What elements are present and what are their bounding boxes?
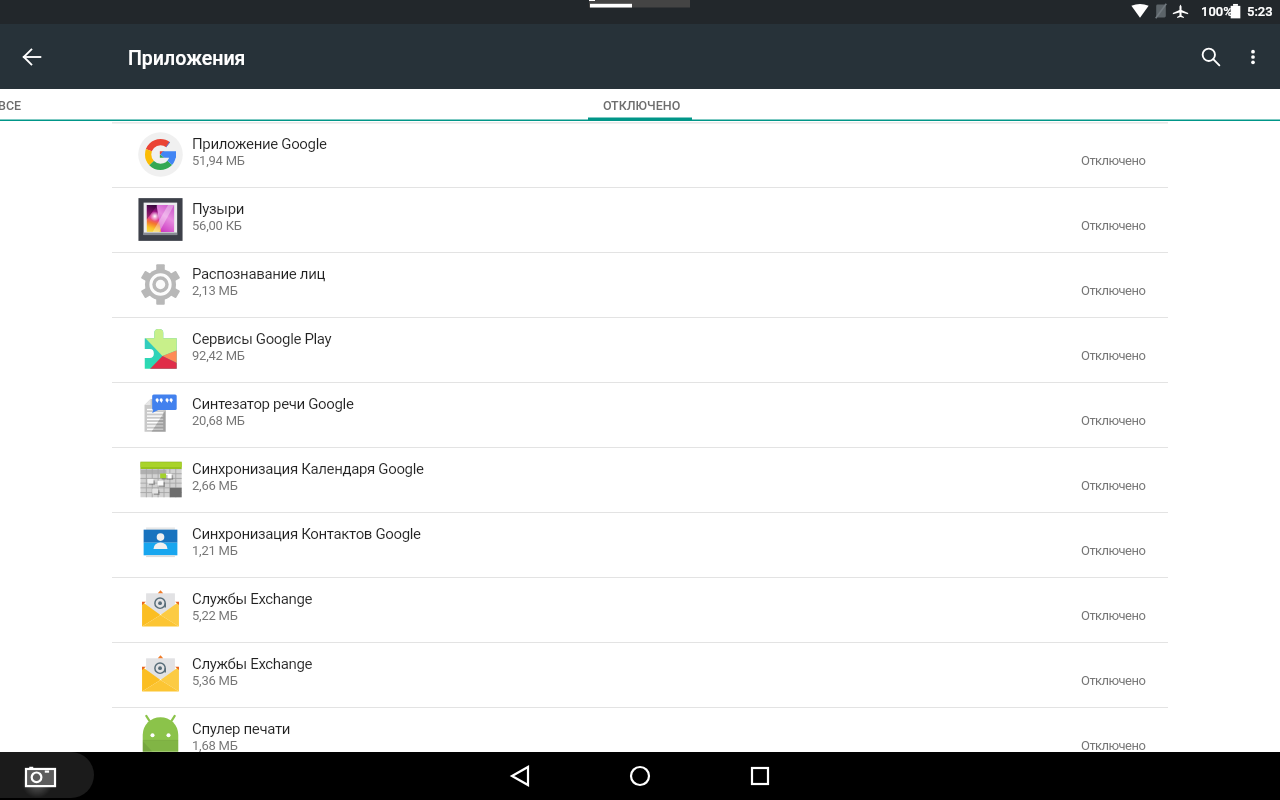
staticText: Синхронизация Контактов Google	[192, 525, 421, 543]
staticText: 100%	[1201, 4, 1233, 19]
button[interactable]: Синхронизация Календаря Google	[0, 447, 1280, 512]
staticText: 92,42 МБ	[192, 348, 245, 363]
button[interactable]: Распознавание лиц	[0, 252, 1280, 317]
staticText: Отключено	[1081, 153, 1146, 168]
staticText: Службы Exchange	[192, 590, 313, 608]
staticText: Пузыри	[192, 200, 245, 218]
staticText: Отключено	[1081, 673, 1146, 688]
staticText: ОТКЛЮЧЕНО	[603, 98, 681, 113]
staticText: 56,00 КБ	[192, 218, 242, 233]
staticText: Приложения	[128, 47, 246, 70]
staticText: Отключено	[1081, 348, 1146, 363]
staticText: 1,68 МБ	[192, 738, 238, 753]
staticText: Синхронизация Календаря Google	[192, 460, 424, 478]
staticText: 51,94 МБ	[192, 153, 245, 168]
staticText: 5:23	[1247, 4, 1273, 19]
staticText: 2,66 МБ	[192, 478, 238, 493]
staticText: Отключено	[1081, 283, 1146, 298]
button[interactable]: Приложение Google	[0, 122, 1280, 187]
staticText: Отключено	[1081, 413, 1146, 428]
staticText: Приложение Google	[192, 135, 327, 153]
staticText: ВСЕ	[0, 98, 22, 113]
button[interactable]: Home	[616, 752, 664, 800]
button[interactable]: Службы Exchange	[0, 577, 1280, 642]
staticText: Службы Exchange	[192, 655, 313, 673]
button[interactable]: Спулер печати	[0, 707, 1280, 752]
button[interactable]: Синхронизация Контактов Google	[0, 512, 1280, 577]
button[interactable]: Сервисы Google Play	[0, 317, 1280, 382]
button[interactable]: More options	[1234, 38, 1272, 76]
staticText: Отключено	[1081, 738, 1146, 753]
staticText: 20,68 МБ	[192, 413, 245, 428]
button[interactable]: Take screenshot	[23, 764, 58, 788]
staticText: Синтезатор речи Google	[192, 395, 354, 413]
staticText: Сервисы Google Play	[192, 330, 332, 348]
button[interactable]: Back	[12, 37, 52, 77]
staticText: Отключено	[1081, 543, 1146, 558]
staticText: Спулер печати	[192, 720, 291, 738]
staticText: Отключено	[1081, 218, 1146, 233]
button[interactable]: Search	[1188, 34, 1234, 80]
staticText: 2,13 МБ	[192, 283, 238, 298]
button[interactable]: Recent apps	[736, 752, 784, 800]
staticText: 1,21 МБ	[192, 543, 238, 558]
staticText: Распознавание лиц	[192, 265, 326, 283]
button[interactable]: Службы Exchange	[0, 642, 1280, 707]
staticText: Отключено	[1081, 478, 1146, 493]
button[interactable]: Пузыри	[0, 187, 1280, 252]
button[interactable]: Back	[496, 752, 544, 800]
button[interactable]: Синтезатор речи Google	[0, 382, 1280, 447]
staticText: 5,22 МБ	[192, 608, 238, 623]
staticText: Отключено	[1081, 608, 1146, 623]
button[interactable]: Screenshot	[0, 752, 94, 798]
staticText: 5,36 МБ	[192, 673, 238, 688]
